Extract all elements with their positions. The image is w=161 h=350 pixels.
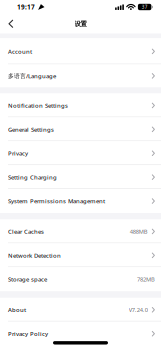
button[interactable]: Notification Settings [0,93,161,117]
staticText: 488MB [130,227,148,235]
staticText: System Permissions Management [8,197,105,205]
staticText: Clear Caches [8,227,44,235]
button[interactable]: Network Detection [0,243,161,267]
staticText: 多语言/Language [8,72,56,80]
button[interactable]: General Settings [0,117,161,141]
staticText: 19:17 [17,3,35,11]
button[interactable]: System Permissions Management [0,189,161,213]
staticText: 37 [142,4,148,10]
button[interactable]: Back [0,17,14,31]
button[interactable]: 多语言/Language [0,64,161,87]
staticText: About [8,306,26,314]
staticText: Notification Settings [8,101,68,109]
staticText: Setting Charging [8,173,57,181]
button[interactable]: Clear Caches [0,219,161,243]
staticText: General Settings [8,125,54,133]
staticText: Account [8,47,32,55]
staticText: V7.24.0 [129,306,148,314]
staticText: 782MB [137,275,155,283]
button[interactable]: Storage space [0,267,161,291]
staticText: Storage space [8,275,47,283]
staticText: 设置 [74,20,86,28]
staticText: Privacy Policy [8,330,48,338]
button[interactable]: Setting Charging [0,165,161,189]
button[interactable]: Privacy Policy [0,322,161,346]
staticText: Privacy [8,149,28,157]
button[interactable]: About [0,298,161,322]
button[interactable]: Account [0,38,161,64]
button[interactable]: Privacy [0,141,161,165]
staticText: Network Detection [8,251,61,259]
